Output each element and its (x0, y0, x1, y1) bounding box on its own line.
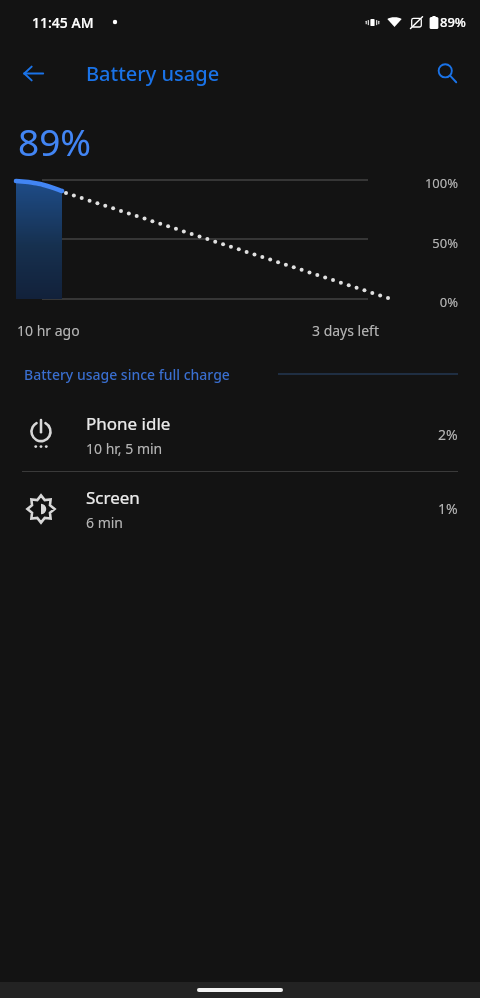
staticText: Battery usage since full charge (24, 365, 230, 384)
staticText: 89% (440, 13, 466, 31)
staticText: 10 hr, 5 min (86, 439, 163, 458)
staticText: 50% (432, 234, 458, 252)
button[interactable]: Phone idle (0, 398, 480, 471)
staticText: 3 days left (312, 321, 379, 340)
staticText: Phone idle (86, 412, 171, 435)
button[interactable]: Screen (0, 472, 480, 545)
staticText: 2% (438, 425, 458, 444)
staticText: 6 min (86, 513, 124, 532)
staticText: Battery usage (86, 60, 220, 87)
staticText: 1% (438, 499, 458, 518)
staticText: Screen (86, 486, 140, 509)
staticText: 100% (424, 174, 458, 192)
staticText: 89% (18, 116, 92, 166)
staticText: 10 hr ago (17, 321, 80, 340)
staticText: 0% (439, 293, 458, 311)
button[interactable]: Back (10, 50, 56, 96)
button[interactable]: Search (424, 50, 470, 96)
staticText: 11:45 AM (32, 13, 94, 32)
